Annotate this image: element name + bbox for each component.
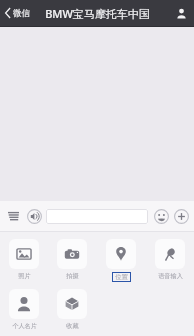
staticText: 拍摄 (66, 272, 79, 280)
button[interactable]: Voice message (24, 206, 44, 226)
button[interactable]: 拍摄 (57, 239, 87, 280)
button[interactable]: 个人名片 (9, 289, 39, 330)
button[interactable]: Emoji (151, 206, 171, 226)
button[interactable] (46, 209, 148, 224)
button[interactable]: 收藏 (57, 289, 87, 330)
button[interactable]: 位置 (106, 239, 136, 282)
staticText: 个人名片 (12, 322, 37, 330)
button[interactable]: Contact info (168, 0, 194, 26)
button[interactable]: 照片 (9, 239, 39, 280)
staticText: 收藏 (66, 322, 79, 330)
button[interactable]: More (3, 206, 23, 226)
staticText: BMW宝马摩托车中国 (45, 6, 150, 21)
button[interactable]: More functions (171, 206, 191, 226)
button[interactable]: 语音输入 (155, 239, 185, 280)
staticText: 微信 (13, 8, 30, 19)
button[interactable]: 微信 (0, 0, 36, 26)
staticText: 语音输入 (158, 272, 183, 280)
staticText: 照片 (18, 272, 31, 280)
staticText: 位置 (115, 273, 128, 281)
